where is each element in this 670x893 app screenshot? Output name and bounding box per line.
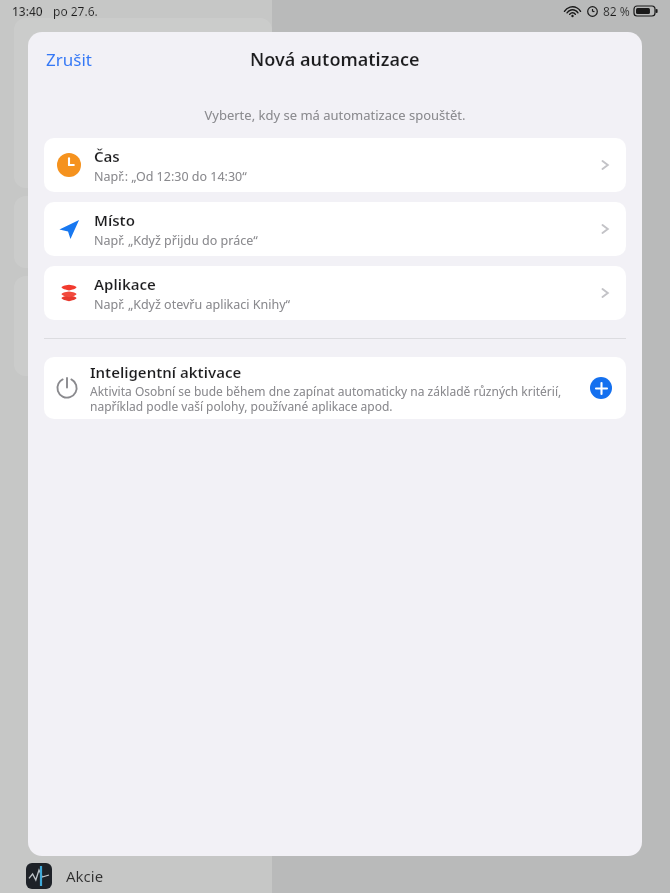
button[interactable]: Přidat (590, 377, 612, 399)
staticText: Vyberte, kdy se má automatizace spouštět… (28, 106, 642, 124)
button[interactable]: Inteligentní aktivace (44, 357, 626, 419)
staticText: Místo (94, 210, 135, 230)
button[interactable]: Aplikace (44, 266, 626, 320)
staticText: Nová automatizace (250, 47, 420, 72)
staticText: Aktivita Osobní se bude během dne zapína… (90, 383, 580, 414)
staticText: Akcie (66, 866, 104, 886)
staticText: 13:40 (12, 3, 43, 19)
staticText: po 27.6. (53, 3, 98, 19)
staticText: Např.: „Od 12:30 do 14:30“ (94, 168, 247, 185)
staticText: Aplikace (94, 274, 156, 294)
button[interactable]: Místo (44, 202, 626, 256)
staticText: Zrušit (46, 48, 92, 71)
staticText: Inteligentní aktivace (90, 362, 242, 382)
button[interactable]: Čas (44, 138, 626, 192)
staticText: Např. „Když přijdu do práce“ (94, 232, 258, 249)
staticText: 82 % (603, 3, 630, 19)
staticText: Např. „Když otevřu aplikaci Knihy“ (94, 296, 291, 313)
button[interactable]: Zrušit (28, 42, 102, 77)
staticText: Čas (94, 146, 120, 166)
